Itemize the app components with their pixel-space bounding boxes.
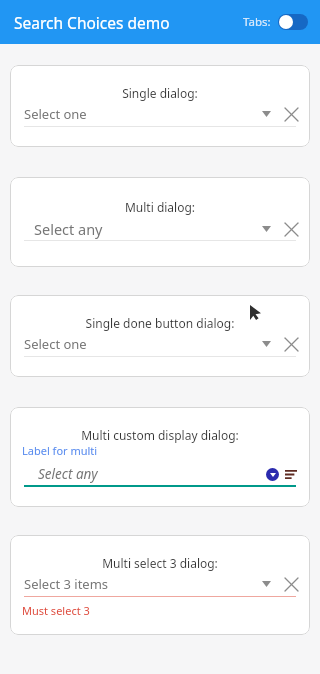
staticText: Must select 3	[22, 603, 90, 618]
button[interactable]: Multi dialog:	[10, 177, 310, 267]
button[interactable]: Open dropdown	[266, 468, 279, 481]
staticText: Label for multi	[22, 443, 98, 458]
button[interactable]: Tabs:	[243, 14, 308, 30]
button[interactable]: Sort	[284, 467, 298, 481]
button[interactable]: Clear	[282, 575, 300, 593]
staticText: Single dialog:	[10, 85, 310, 101]
button[interactable]: Multi custom display dialog:	[10, 407, 310, 507]
staticText: Select one	[24, 105, 87, 123]
button[interactable]: Clear	[282, 220, 300, 238]
staticText: Select any	[34, 219, 103, 239]
button[interactable]: Open dropdown	[257, 335, 275, 353]
staticText: Tabs:	[243, 14, 271, 30]
button[interactable]: Open dropdown	[257, 105, 275, 123]
button[interactable]: Single done button dialog:	[10, 295, 310, 377]
staticText: Select one	[24, 335, 87, 353]
button[interactable]: Clear	[282, 105, 300, 123]
button[interactable]: Open dropdown	[257, 220, 275, 238]
staticText: Multi custom display dialog:	[10, 427, 310, 443]
staticText: Select any	[38, 465, 98, 483]
button[interactable]: Clear	[282, 335, 300, 353]
other: Toggle tabs	[278, 14, 308, 30]
staticText: Multi select 3 dialog:	[10, 555, 310, 571]
staticText: Search Choices demo	[14, 12, 170, 33]
button[interactable]: Multi select 3 dialog:	[10, 535, 310, 635]
button[interactable]: Single dialog:	[10, 65, 310, 147]
staticText: Multi dialog:	[10, 199, 310, 215]
staticText: Single done button dialog:	[10, 315, 310, 331]
staticText: Select 3 items	[24, 575, 109, 593]
button[interactable]: Open dropdown	[257, 575, 275, 593]
